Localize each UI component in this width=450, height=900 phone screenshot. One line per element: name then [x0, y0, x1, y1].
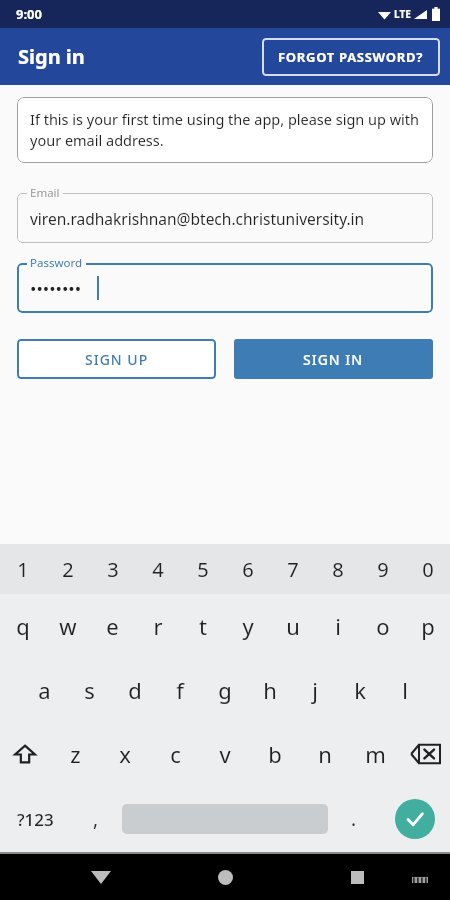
- button[interactable]: 0: [405, 544, 450, 594]
- button[interactable]: r: [135, 594, 180, 658]
- button[interactable]: m: [350, 722, 400, 786]
- staticText: 3: [107, 556, 119, 583]
- staticText: x: [119, 739, 131, 769]
- staticText: u: [286, 611, 300, 641]
- staticText: f: [176, 675, 184, 705]
- button[interactable]: x: [100, 722, 150, 786]
- staticText: k: [354, 675, 366, 705]
- button[interactable]: i: [315, 594, 360, 658]
- staticText: o: [376, 611, 390, 641]
- staticText: ?123: [17, 808, 54, 831]
- staticText: l: [402, 675, 408, 705]
- button[interactable]: 2: [45, 544, 90, 594]
- staticText: viren.radhakrishnan@btech.christuniversi…: [30, 208, 365, 229]
- staticText: 8: [332, 556, 344, 583]
- staticText: y: [242, 611, 254, 641]
- staticText: s: [84, 675, 95, 705]
- staticText: ••••••••: [30, 277, 82, 300]
- button[interactable]: l: [382, 658, 427, 722]
- button[interactable]: v: [200, 722, 250, 786]
- button[interactable]: d: [112, 658, 157, 722]
- button[interactable]: c: [150, 722, 200, 786]
- button[interactable]: n: [300, 722, 350, 786]
- button[interactable]: e: [90, 594, 135, 658]
- staticText: p: [421, 611, 435, 641]
- staticText: g: [218, 675, 232, 705]
- staticText: 9: [377, 556, 389, 583]
- staticText: If this is your first time using the app…: [30, 109, 420, 151]
- staticText: LTE: [394, 7, 411, 21]
- button[interactable]: ••••••••: [17, 263, 433, 313]
- staticText: n: [318, 739, 332, 769]
- button[interactable]: p: [405, 594, 450, 658]
- button[interactable]: j: [292, 658, 337, 722]
- staticText: r: [153, 611, 163, 641]
- staticText: SIGN UP: [85, 350, 149, 369]
- staticText: SIGN IN: [303, 350, 364, 369]
- button[interactable]: h: [247, 658, 292, 722]
- button[interactable]: 6: [225, 544, 270, 594]
- button[interactable]: ,: [70, 786, 122, 852]
- staticText: Email: [30, 185, 60, 201]
- staticText: Sign in: [18, 43, 85, 70]
- staticText: t: [199, 611, 207, 641]
- button[interactable]: b: [250, 722, 300, 786]
- button[interactable]: viren.radhakrishnan@btech.christuniversi…: [17, 193, 433, 243]
- button[interactable]: SIGN UP: [17, 339, 216, 379]
- button[interactable]: 5: [180, 544, 225, 594]
- button[interactable]: o: [360, 594, 405, 658]
- staticText: z: [70, 739, 81, 769]
- staticText: h: [263, 675, 277, 705]
- staticText: j: [312, 675, 318, 705]
- button[interactable]: Home: [208, 860, 242, 894]
- button[interactable]: g: [202, 658, 247, 722]
- staticText: c: [170, 739, 181, 769]
- button[interactable]: Back: [84, 860, 118, 894]
- staticText: 7: [287, 556, 299, 583]
- staticText: e: [106, 611, 119, 641]
- button[interactable]: SIGN IN: [234, 339, 433, 379]
- button[interactable]: 4: [135, 544, 180, 594]
- button[interactable]: ?123: [0, 786, 70, 852]
- staticText: b: [268, 739, 282, 769]
- staticText: ,: [93, 806, 99, 832]
- button[interactable]: q: [0, 594, 45, 658]
- staticText: a: [38, 675, 51, 705]
- button[interactable]: Switch keyboard: [406, 863, 434, 891]
- staticText: 1: [17, 556, 29, 583]
- button[interactable]: Shift: [0, 722, 50, 786]
- staticText: 5: [197, 556, 209, 583]
- staticText: w: [59, 611, 77, 641]
- staticText: q: [16, 611, 30, 641]
- button[interactable]: f: [157, 658, 202, 722]
- button[interactable]: u: [270, 594, 315, 658]
- staticText: i: [335, 611, 341, 641]
- button[interactable]: Recents: [340, 860, 374, 894]
- button[interactable]: 8: [315, 544, 360, 594]
- staticText: 6: [242, 556, 254, 583]
- button[interactable]: 1: [0, 544, 45, 594]
- staticText: d: [128, 675, 142, 705]
- staticText: m: [365, 739, 386, 769]
- button[interactable]: 9: [360, 544, 405, 594]
- button[interactable]: Enter: [380, 786, 450, 852]
- button[interactable]: a: [22, 658, 67, 722]
- button[interactable]: FORGOT PASSWORD?: [262, 38, 440, 76]
- button[interactable]: y: [225, 594, 270, 658]
- staticText: 9:00: [16, 5, 42, 23]
- staticText: 4: [152, 556, 164, 583]
- button[interactable]: z: [50, 722, 100, 786]
- staticText: Password: [30, 255, 83, 271]
- button[interactable]: w: [45, 594, 90, 658]
- staticText: 0: [422, 556, 434, 583]
- button[interactable]: 3: [90, 544, 135, 594]
- staticText: .: [351, 806, 357, 832]
- button[interactable]: k: [337, 658, 382, 722]
- staticText: FORGOT PASSWORD?: [278, 48, 424, 66]
- button[interactable]: t: [180, 594, 225, 658]
- button[interactable]: s: [67, 658, 112, 722]
- button[interactable]: 7: [270, 544, 315, 594]
- button[interactable]: Backspace: [400, 722, 450, 786]
- button[interactable]: .: [328, 786, 380, 852]
